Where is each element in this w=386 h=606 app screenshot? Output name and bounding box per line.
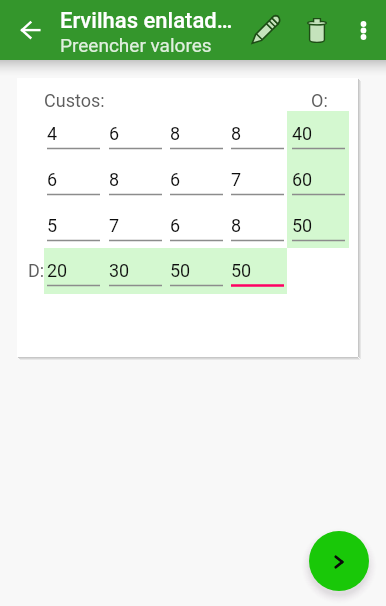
button[interactable]: Delete [293,6,341,54]
button[interactable]: Back [6,6,54,54]
button[interactable]: 8 [170,123,223,143]
staticText: 50 [292,215,313,235]
button[interactable]: 50 [170,260,223,280]
staticText: 8 [231,215,242,235]
staticText: 60 [292,169,313,189]
button[interactable]: 6 [170,169,223,189]
button[interactable]: 60 [292,169,345,189]
staticText: 6 [47,169,58,189]
button[interactable]: 40 [292,123,345,143]
staticText: 4 [47,123,58,143]
staticText: Custos: [44,90,105,111]
button[interactable]: 7 [231,169,284,189]
staticText: Ervilhas enlatad… [60,8,233,34]
button[interactable]: 8 [109,169,162,189]
staticText: 7 [109,215,120,235]
button[interactable]: Edit [242,6,290,54]
button[interactable]: 4 [47,123,100,143]
staticText: 50 [231,260,252,280]
button[interactable]: 6 [47,169,100,189]
staticText: O: [311,90,328,111]
button[interactable]: 8 [231,215,284,235]
staticText: 8 [170,123,181,143]
button[interactable]: 50 [231,260,284,280]
staticText: 5 [47,215,58,235]
staticText: Preencher valores [60,34,212,56]
button[interactable]: 50 [292,215,345,235]
button[interactable]: More options [340,7,386,53]
button[interactable]: 7 [109,215,162,235]
staticText: 6 [170,215,181,235]
button[interactable]: 6 [109,123,162,143]
button[interactable]: 30 [109,260,162,280]
button[interactable]: 5 [47,215,100,235]
staticText: 6 [109,123,120,143]
staticText: 50 [170,260,191,280]
staticText: D: [28,260,45,281]
staticText: 7 [231,169,242,189]
button[interactable]: 8 [231,123,284,143]
staticText: 30 [109,260,130,280]
staticText: 8 [109,169,120,189]
staticText: 40 [292,123,313,143]
staticText: 8 [231,123,242,143]
staticText: 6 [170,169,181,189]
button[interactable]: 20 [47,260,100,280]
button[interactable]: 6 [170,215,223,235]
staticText: 20 [47,260,68,280]
button[interactable]: Next [309,531,369,591]
